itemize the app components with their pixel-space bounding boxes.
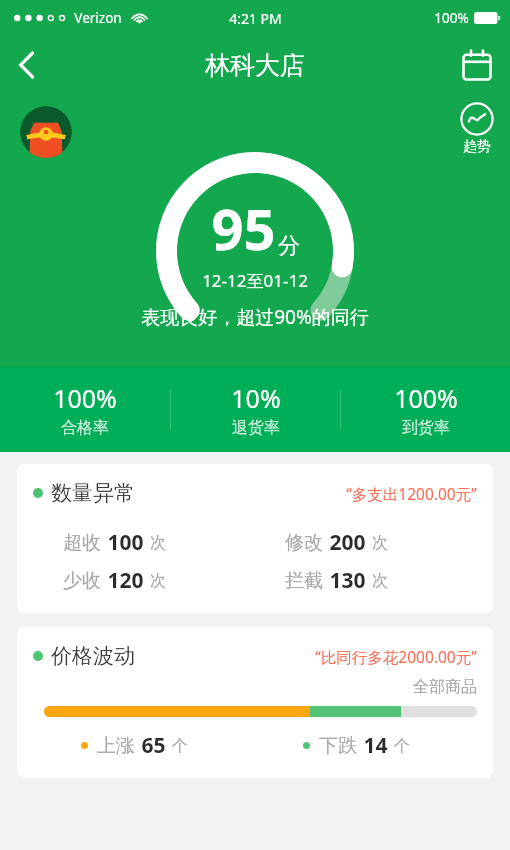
staticText: 14	[363, 731, 388, 760]
staticText: 个	[172, 736, 188, 756]
staticText: 表现良好，超过90%的同行	[141, 304, 369, 330]
staticText: Verizon	[74, 9, 122, 27]
staticText: 下跌	[319, 734, 357, 758]
button[interactable]: 100%	[0, 373, 170, 446]
staticText: 12-12至01-12	[202, 269, 308, 292]
button[interactable]: Back	[0, 38, 54, 92]
staticText: 10%	[231, 381, 281, 415]
staticText: 200	[329, 528, 366, 557]
staticText: 130	[329, 566, 366, 595]
staticText: 上涨	[97, 734, 135, 758]
staticText: 数量异常	[51, 480, 135, 506]
staticText: “比同行多花2000.00元”	[315, 646, 477, 667]
staticText: 全部商品	[413, 677, 477, 697]
staticText: 次	[150, 533, 166, 553]
staticText: 100%	[53, 381, 117, 415]
staticText: 合格率	[61, 418, 109, 438]
staticText: 趋势	[463, 138, 491, 156]
button[interactable]: 价格波动	[17, 627, 493, 778]
staticText: 少收	[63, 569, 101, 593]
staticText: 65	[141, 731, 166, 760]
staticText: 次	[150, 571, 166, 591]
staticText: 林科大店	[205, 50, 305, 81]
staticText: 4:21 PM	[229, 9, 282, 28]
staticText: 到货率	[402, 418, 450, 438]
button[interactable]: 10%	[171, 373, 340, 446]
staticText: 个	[394, 736, 410, 756]
staticText: 次	[372, 533, 388, 553]
button[interactable]: Calendar	[452, 40, 502, 90]
staticText: 100%	[394, 381, 458, 415]
staticText: 100%	[434, 9, 469, 27]
staticText: 次	[372, 571, 388, 591]
staticText: 退货率	[232, 418, 280, 438]
staticText: “多支出1200.00元”	[346, 483, 477, 504]
button[interactable]: Shop avatar	[20, 106, 72, 158]
button[interactable]: 趋势	[460, 102, 494, 156]
staticText: 95	[211, 190, 276, 266]
staticText: 100	[107, 528, 144, 557]
staticText: 分	[278, 232, 300, 260]
staticText: 超收	[63, 531, 101, 555]
staticText: 价格波动	[51, 643, 135, 669]
staticText: 拦截	[285, 569, 323, 593]
button[interactable]: 100%	[341, 373, 510, 446]
staticText: 120	[107, 566, 144, 595]
button[interactable]: 数量异常	[17, 464, 493, 613]
staticText: 修改	[285, 531, 323, 555]
